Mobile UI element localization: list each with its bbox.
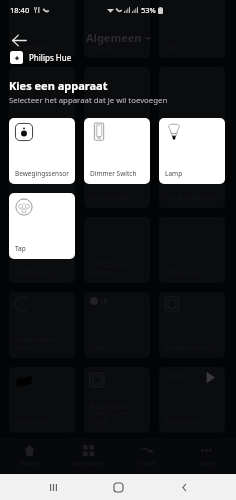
button[interactable]: Home [0,438,59,474]
staticText: Flows [139,459,157,468]
staticText: Meer [199,459,215,468]
staticText: Philips Hue [29,52,72,63]
staticText: Woonkamer [15,43,71,52]
staticText: Dimmer Switch [90,169,137,178]
staticText: Kies een apparaat [9,78,108,93]
staticText: LG [100,297,108,305]
staticText: 53% [141,5,156,15]
staticText: Lamp achter [15,193,71,202]
staticText: Thermostaat [15,118,71,127]
staticText: Keuken [90,43,146,52]
staticText: 18:40 [10,5,30,15]
staticText: Groot raam voor [90,118,146,127]
button[interactable]: Terug [8,29,30,51]
staticText: Home [20,459,39,468]
button[interactable]: Philips Hue [10,51,72,64]
staticText: Lamp erker [165,118,221,127]
button[interactable]: Tap [9,193,75,259]
staticText: Algemeen [86,30,142,45]
button[interactable]: Bewegingssensor [9,118,75,184]
button[interactable]: Apparaten [59,438,118,474]
staticText: Tap [15,244,26,253]
staticText: Keuken [15,477,71,486]
staticText: Slaapkamer [165,477,221,486]
staticText: Lamp [165,169,183,178]
button[interactable]: Terug [171,474,197,500]
button[interactable]: Home [105,474,131,500]
staticText: Tuin [90,477,146,486]
staticText: Bewegingssensor [15,169,69,178]
button[interactable]: Recente apps [40,474,66,500]
staticText: Apparaten [72,459,105,468]
button[interactable]: Dimmer Switch [84,118,150,184]
staticText: Selecteer het apparaat dat je wil toevoe… [9,95,168,106]
button[interactable]: Lamp [159,118,225,184]
staticText: SONOS [165,374,184,380]
